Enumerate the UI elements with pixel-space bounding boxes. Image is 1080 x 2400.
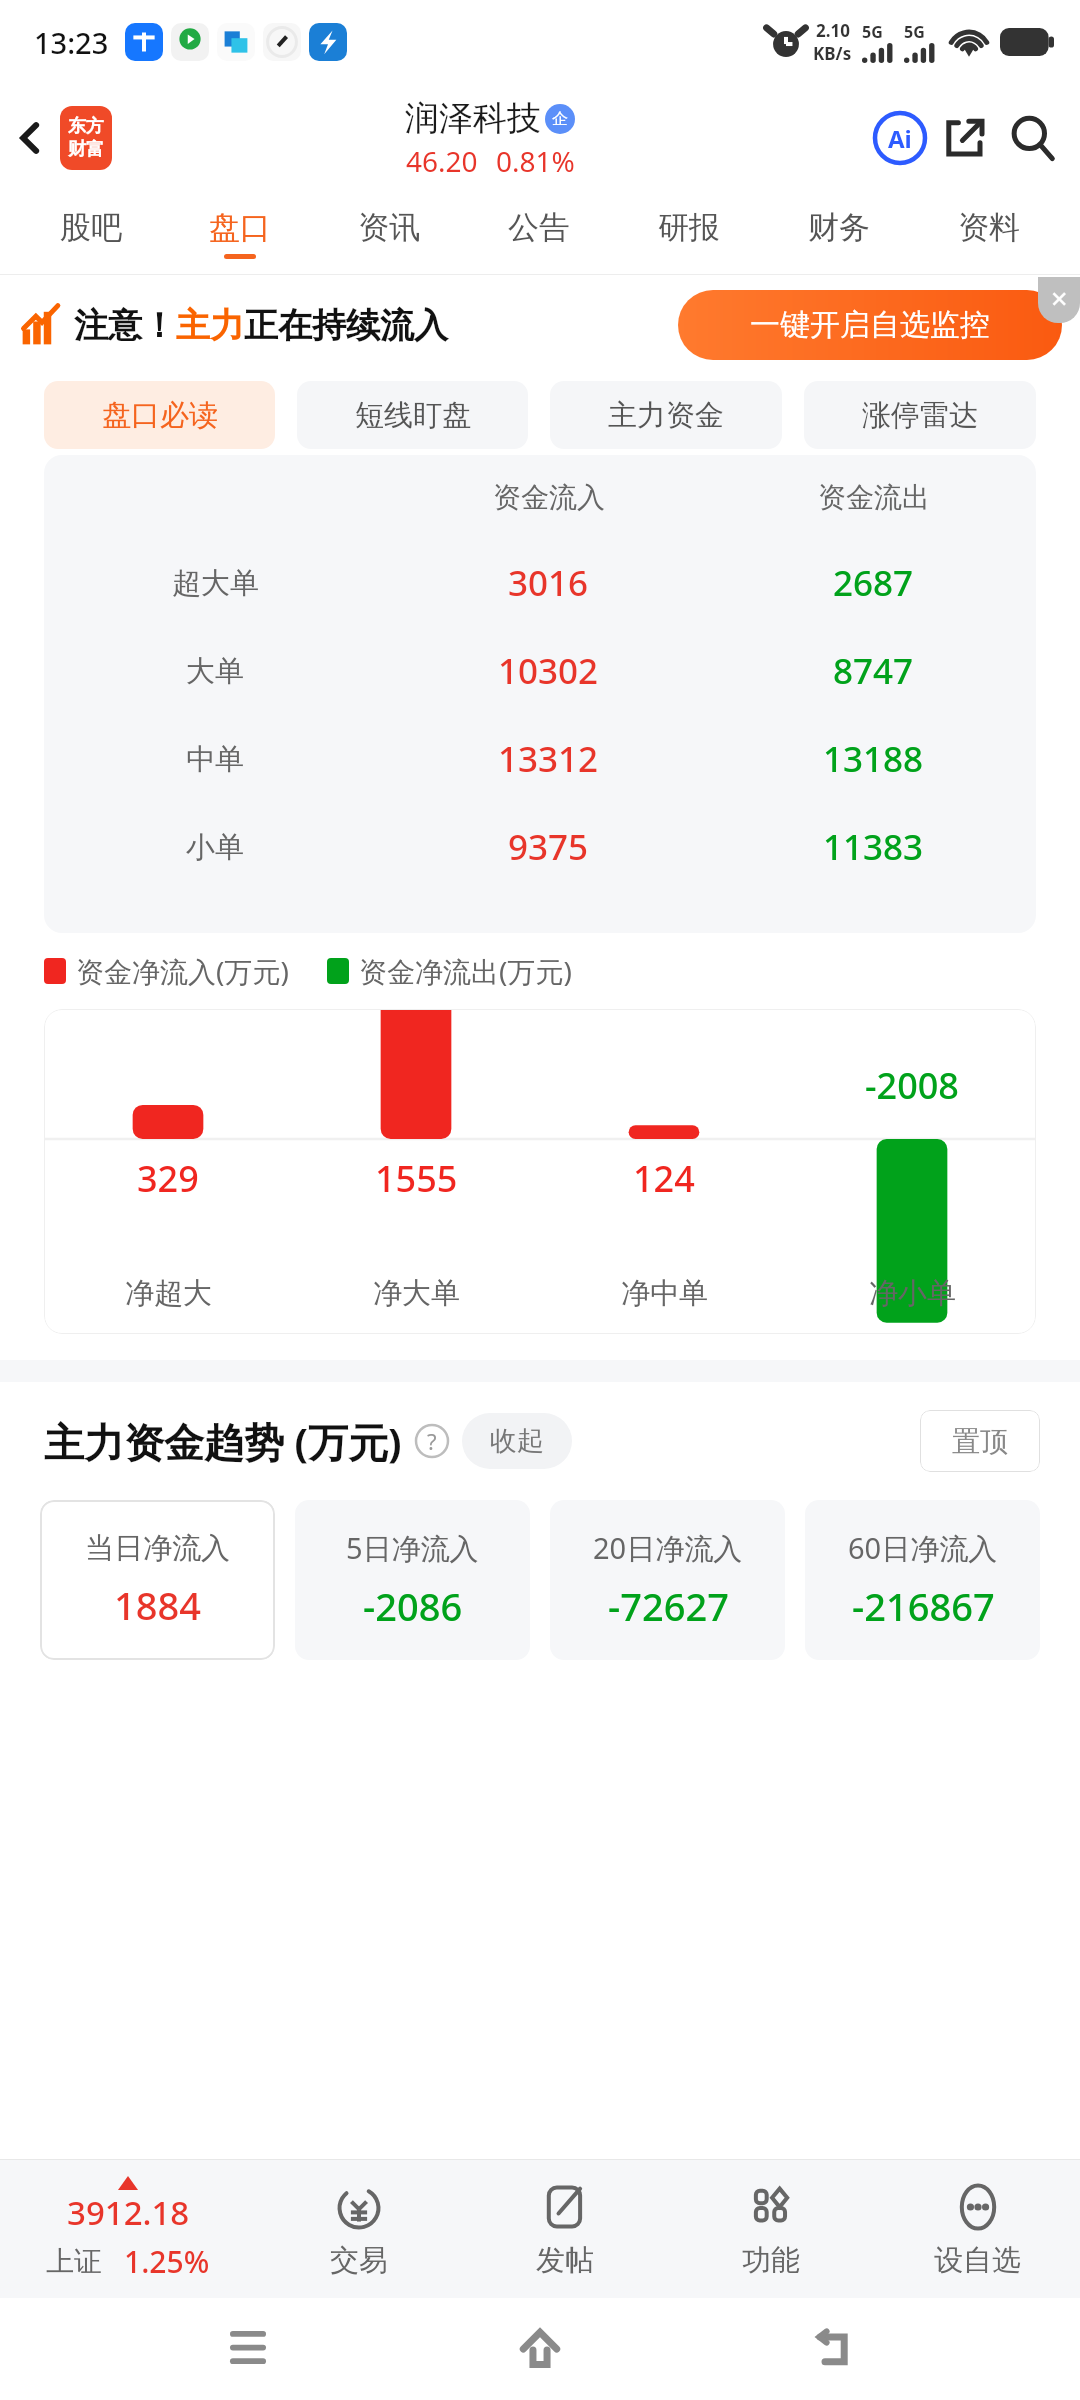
- button[interactable]: 收起: [462, 1413, 572, 1469]
- button[interactable]: Help: [414, 1423, 450, 1459]
- other: Trade: [332, 2180, 386, 2234]
- staticText: 46.20: [406, 142, 478, 180]
- button[interactable]: 大单: [44, 627, 1036, 715]
- other: Functions: [744, 2180, 798, 2234]
- button[interactable]: Recents: [203, 2304, 293, 2394]
- staticText: 资金流入: [493, 480, 605, 515]
- button[interactable]: 短线盯盘: [297, 381, 528, 449]
- staticText: 当日净流入: [85, 1530, 230, 1567]
- button[interactable]: 3912.18: [0, 2160, 256, 2298]
- staticText: 2.10: [816, 19, 850, 42]
- staticText: Ai: [888, 122, 912, 155]
- button[interactable]: 超大单: [44, 539, 1036, 627]
- staticText: 资料: [958, 208, 1020, 247]
- button[interactable]: Watchlist: [874, 2160, 1080, 2298]
- staticText: 收起: [490, 1424, 544, 1458]
- staticText: 超大单: [172, 565, 259, 602]
- staticText: 3912.18: [67, 2190, 190, 2235]
- staticText: 8747: [833, 647, 914, 695]
- staticText: 中单: [186, 741, 244, 778]
- staticText: 资金净流出(万元): [359, 952, 572, 990]
- staticText: 企: [552, 109, 568, 129]
- staticText: 0.81%: [496, 142, 575, 180]
- staticText: 研报: [658, 208, 720, 247]
- staticText: 主力: [176, 304, 244, 347]
- staticText: 1555: [375, 1154, 458, 1203]
- button[interactable]: Back: [0, 84, 60, 192]
- button[interactable]: 一键开启自选监控: [678, 290, 1062, 360]
- button[interactable]: Close: [1038, 277, 1080, 323]
- button[interactable]: Back: [788, 2304, 878, 2394]
- button[interactable]: 股吧: [16, 192, 165, 274]
- staticText: -2008: [865, 1061, 959, 1110]
- staticText: 20日净流入: [593, 1528, 743, 1568]
- staticText: 9375: [508, 823, 589, 871]
- staticText: 329: [137, 1154, 199, 1203]
- staticText: 13312: [498, 735, 599, 783]
- button[interactable]: Share: [932, 106, 996, 170]
- staticText: 短线盯盘: [355, 397, 471, 434]
- button[interactable]: 资料: [914, 192, 1064, 274]
- staticText: 3016: [508, 559, 589, 607]
- staticText: 涨停雷达: [862, 397, 978, 434]
- staticText: 发帖: [536, 2242, 594, 2279]
- staticText: 11383: [823, 823, 924, 871]
- button[interactable]: 20日净流入: [550, 1500, 785, 1660]
- staticText: 13:23: [34, 23, 109, 62]
- button[interactable]: Functions: [668, 2160, 874, 2298]
- staticText: 润泽科技: [405, 97, 541, 140]
- staticText: -216867: [852, 1580, 995, 1632]
- button[interactable]: 资讯: [314, 192, 464, 274]
- staticText: 净中单: [621, 1275, 708, 1312]
- button[interactable]: 盘口: [165, 192, 314, 274]
- staticText: 资讯: [358, 208, 420, 247]
- staticText: 盘口必读: [102, 397, 218, 434]
- button[interactable]: 中单: [44, 715, 1036, 803]
- staticText: 大单: [186, 653, 244, 690]
- button[interactable]: Home: [495, 2304, 585, 2394]
- staticText: 设自选: [934, 2242, 1021, 2279]
- button[interactable]: 5日净流入: [295, 1500, 530, 1660]
- other: Watchlist: [951, 2180, 1005, 2234]
- staticText: 股吧: [60, 208, 122, 247]
- staticText: 净大单: [373, 1275, 460, 1312]
- button[interactable]: 60日净流入: [805, 1500, 1040, 1660]
- staticText: -72627: [608, 1580, 729, 1632]
- staticText: 60日净流入: [848, 1528, 998, 1568]
- staticText: 一键开启自选监控: [750, 306, 990, 344]
- button[interactable]: 研报: [614, 192, 764, 274]
- staticText: 资金流出: [818, 480, 930, 515]
- staticText: 财务: [808, 208, 870, 247]
- staticText: 124: [633, 1154, 695, 1203]
- staticText: 注意！: [74, 304, 176, 347]
- button[interactable]: 涨停雷达: [804, 381, 1036, 449]
- button[interactable]: Search: [996, 101, 1070, 175]
- button[interactable]: 盘口必读: [44, 381, 275, 449]
- staticText: 上证: [46, 2244, 102, 2279]
- button[interactable]: 东方财富: [60, 106, 112, 170]
- staticText: 交易: [330, 2242, 388, 2279]
- staticText: 主力资金: [608, 397, 724, 434]
- staticText: 正在持续流入: [244, 304, 448, 347]
- button[interactable]: 财务: [764, 192, 914, 274]
- button[interactable]: 小单: [44, 803, 1036, 891]
- button[interactable]: 公告: [464, 192, 614, 274]
- staticText: 5G: [862, 21, 883, 43]
- staticText: 5G: [904, 21, 925, 43]
- other: Post: [538, 2180, 592, 2234]
- staticText: 资金净流入(万元): [76, 952, 289, 990]
- button[interactable]: AI: [868, 106, 932, 170]
- staticText: 1.25%: [124, 2241, 210, 2282]
- staticText: ?: [427, 1426, 437, 1456]
- button[interactable]: 置顶: [920, 1410, 1040, 1472]
- staticText: 5日净流入: [346, 1528, 479, 1568]
- button[interactable]: Trade: [256, 2160, 462, 2298]
- staticText: 10302: [498, 647, 599, 695]
- button[interactable]: 当日净流入: [40, 1500, 275, 1660]
- staticText: 盘口: [209, 208, 271, 247]
- button[interactable]: Post: [462, 2160, 668, 2298]
- staticText: 置顶: [952, 1424, 1008, 1459]
- button[interactable]: 主力资金: [550, 381, 782, 449]
- staticText: ✕: [1050, 287, 1069, 313]
- staticText: 小单: [186, 829, 244, 866]
